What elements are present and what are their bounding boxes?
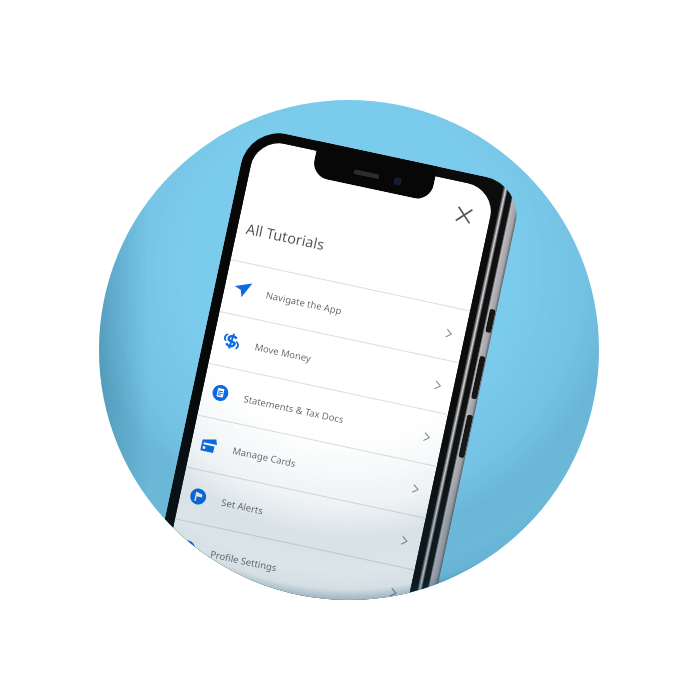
staticText: Manage Cards — [231, 444, 413, 495]
button[interactable]: Profile Settings — [164, 519, 414, 600]
button[interactable]: Manage Cards — [186, 416, 437, 518]
button[interactable]: Set Alerts — [175, 467, 426, 570]
button[interactable]: Navigate the App — [220, 260, 470, 362]
staticText: Set Alerts — [220, 496, 402, 547]
staticText: Statements & Tax Docs — [242, 392, 424, 443]
button[interactable]: Move Money — [208, 312, 459, 414]
staticText: Move Money — [253, 340, 435, 391]
staticText: All Tutorials — [244, 218, 327, 254]
button[interactable]: Close — [445, 196, 483, 234]
button[interactable]: Statements & Tax Docs — [197, 364, 448, 466]
staticText: Profile Settings — [209, 548, 391, 599]
staticText: Navigate the App — [265, 288, 446, 340]
